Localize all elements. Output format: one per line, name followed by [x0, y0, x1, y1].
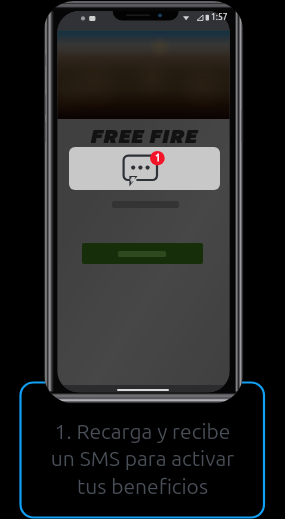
staticText: FREE FIRE	[91, 120, 199, 144]
button[interactable]: Mensaje SMS	[69, 147, 220, 190]
staticText: 1:57	[211, 12, 228, 22]
button[interactable]: Continuar	[82, 243, 203, 264]
staticText: 1. Recarga y recibe un SMS para activar …	[20, 419, 265, 498]
staticText: 1	[155, 152, 161, 163]
